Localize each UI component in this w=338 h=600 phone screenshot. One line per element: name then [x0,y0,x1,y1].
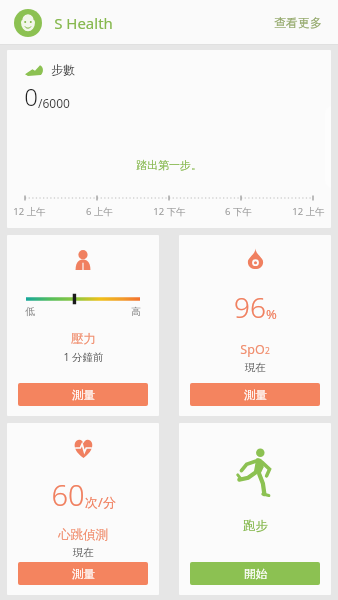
staticText: SpO [240,341,265,358]
staticText: 開始 [244,567,267,581]
staticText: 心跳偵測 [58,527,108,543]
staticText: 測量 [72,567,95,581]
staticText: 6 下午 [225,205,252,218]
staticText: 查看更多 [274,15,322,30]
staticText: 現在 [73,546,94,559]
staticText: 低 [25,305,35,318]
staticText: 12 上午 [13,205,46,218]
staticText: 踏出第一步。 [136,158,202,172]
staticText: /6000 [38,95,70,111]
staticText: 96 [234,288,266,326]
staticText: 高 [131,305,141,318]
button[interactable]: 步數 [7,50,331,228]
staticText: 12 上午 [292,205,325,218]
button[interactable]: Start running [190,562,320,585]
staticText: 12 下午 [153,205,186,218]
staticText: 步數 [51,62,75,77]
staticText: 現在 [245,361,266,374]
button[interactable]: 查看更多 [272,9,324,36]
staticText: S Health [54,13,113,33]
staticText: 測量 [244,388,267,402]
button[interactable]: Measure SpO2 [190,383,320,406]
staticText: 跑步 [243,518,268,534]
staticText: 0 [24,80,38,113]
staticText: 壓力 [71,331,96,347]
staticText: 2 [265,345,270,357]
staticText: 測量 [72,388,95,402]
staticText: 1 分鐘前 [63,350,104,364]
staticText: % [266,305,277,323]
staticText: 次/分 [85,493,116,511]
button[interactable]: Measure heart rate [18,562,148,585]
button[interactable]: Measure stress [18,383,148,406]
staticText: 6 上午 [86,205,113,218]
staticText: 60 [51,475,85,514]
